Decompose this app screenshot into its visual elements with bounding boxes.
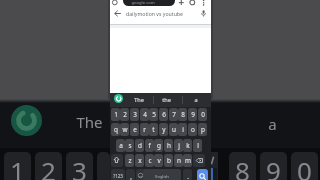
- staticText: 4: [143, 110, 147, 119]
- staticText: e: [133, 125, 137, 134]
- staticText: n: [177, 156, 181, 165]
- staticText: s: [128, 141, 132, 150]
- staticText: 3: [72, 153, 87, 180]
- button[interactable]: a: [116, 139, 125, 152]
- button[interactable]: [97, 152, 110, 180]
- button[interactable]: c: [145, 154, 154, 167]
- staticText: i: [182, 125, 184, 134]
- staticText: 2: [123, 110, 127, 119]
- button[interactable]: l: [193, 139, 202, 152]
- staticText: English: [155, 174, 169, 179]
- button[interactable]: 2: [120, 108, 129, 121]
- button[interactable]: s: [125, 139, 134, 152]
- button[interactable]: [114, 10, 122, 17]
- button[interactable]: 2: [35, 152, 62, 180]
- button[interactable]: h: [164, 139, 173, 152]
- staticText: g: [157, 141, 161, 150]
- staticText: 6: [162, 110, 166, 119]
- button[interactable]: t: [149, 123, 158, 136]
- button[interactable]: x: [135, 154, 144, 167]
- button[interactable]: [201, 10, 206, 18]
- button[interactable]: k: [183, 139, 192, 152]
- button[interactable]: [111, 154, 123, 167]
- button[interactable]: ,: [126, 169, 135, 180]
- button[interactable]: q: [111, 123, 120, 136]
- staticText: z: [128, 156, 132, 165]
- button[interactable]: y: [159, 123, 168, 136]
- button[interactable]: [114, 94, 123, 103]
- staticText: p: [201, 125, 205, 134]
- button[interactable]: 6: [159, 108, 168, 121]
- button[interactable]: f: [145, 139, 154, 152]
- button[interactable]: d: [135, 139, 144, 152]
- staticText: l: [197, 141, 199, 150]
- button[interactable]: .: [183, 169, 192, 180]
- button[interactable]: z: [125, 154, 134, 167]
- button[interactable]: 3: [130, 108, 139, 121]
- button[interactable]: v: [154, 154, 163, 167]
- button[interactable]: i: [178, 123, 187, 136]
- button[interactable]: u: [169, 123, 178, 136]
- staticText: 3: [133, 110, 137, 119]
- staticText: u: [172, 125, 176, 134]
- button[interactable]: the: [156, 93, 177, 106]
- staticText: The: [134, 96, 144, 104]
- button[interactable]: 1: [111, 108, 120, 121]
- button[interactable]: [193, 154, 205, 167]
- staticText: c: [148, 156, 152, 165]
- staticText: h: [167, 141, 171, 150]
- button[interactable]: 7: [169, 108, 178, 121]
- staticText: j: [178, 141, 180, 150]
- button[interactable]: g: [154, 139, 163, 152]
- button[interactable]: [136, 169, 145, 180]
- staticText: .: [187, 172, 189, 180]
- staticText: b: [167, 156, 171, 165]
- staticText: 8: [235, 153, 250, 180]
- staticText: a: [119, 141, 123, 150]
- button[interactable]: p: [198, 123, 207, 136]
- button[interactable]: 9: [188, 108, 197, 121]
- button[interactable]: [123, 0, 175, 6]
- staticText: The: [76, 112, 103, 129]
- button[interactable]: m: [183, 154, 192, 167]
- button[interactable]: 8: [229, 152, 256, 180]
- button[interactable]: The: [128, 93, 149, 106]
- staticText: a: [268, 114, 277, 132]
- staticText: 7: [172, 110, 176, 119]
- button[interactable]: b: [164, 154, 173, 167]
- staticText: m: [185, 156, 191, 165]
- staticText: ,: [130, 172, 132, 180]
- button[interactable]: 9: [260, 152, 287, 180]
- staticText: o: [191, 125, 195, 134]
- button[interactable]: 8: [178, 108, 187, 121]
- staticText: d: [138, 141, 142, 150]
- button[interactable]: 0: [291, 152, 318, 180]
- button[interactable]: a: [186, 93, 206, 106]
- button[interactable]: w: [120, 123, 129, 136]
- staticText: r: [143, 125, 146, 134]
- button[interactable]: English: [143, 169, 181, 180]
- staticText: k: [186, 141, 190, 150]
- staticText: t: [152, 125, 155, 134]
- staticText: ?123: [113, 173, 123, 179]
- button[interactable]: n: [174, 154, 183, 167]
- staticText: dailymotion vs youtube: [126, 10, 183, 17]
- button[interactable]: 4: [140, 108, 149, 121]
- staticText: 1: [10, 153, 25, 180]
- button[interactable]: j: [174, 139, 183, 152]
- staticText: 5: [152, 110, 156, 119]
- button[interactable]: [197, 169, 208, 180]
- staticText: y: [162, 125, 166, 134]
- button[interactable]: 1: [4, 152, 31, 180]
- button[interactable]: r: [140, 123, 149, 136]
- staticText: 0: [201, 110, 205, 119]
- staticText: v: [157, 156, 161, 165]
- staticText: f: [148, 141, 151, 150]
- staticText: 0: [297, 153, 312, 180]
- button[interactable]: o: [188, 123, 197, 136]
- button[interactable]: e: [130, 123, 139, 136]
- button[interactable]: ?123: [111, 169, 125, 180]
- button[interactable]: 0: [198, 108, 207, 121]
- button[interactable]: 3: [66, 152, 93, 180]
- button[interactable]: 5: [149, 108, 158, 121]
